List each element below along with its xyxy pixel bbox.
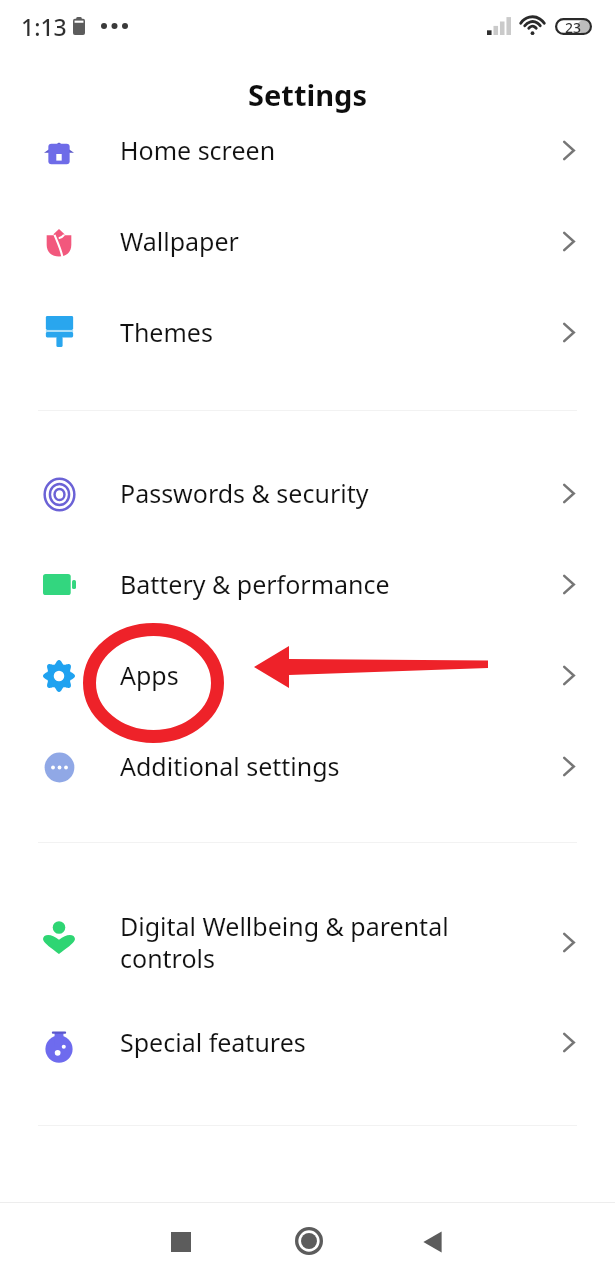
button[interactable]: Special features [0, 996, 615, 1087]
button[interactable]: Digital Wellbeing & parental controls [0, 888, 615, 996]
staticText: Wallpaper [120, 224, 555, 258]
staticText: Apps [120, 658, 555, 692]
button[interactable]: Apps [0, 629, 615, 720]
button[interactable]: Passwords & security [0, 447, 615, 538]
staticText: Themes [120, 315, 555, 349]
button[interactable]: Home screen [0, 104, 615, 195]
staticText: Digital Wellbeing & parental controls [120, 909, 555, 975]
button[interactable]: Battery & performance [0, 538, 615, 629]
button[interactable]: Wallpaper [0, 195, 615, 286]
staticText: 1:13 [21, 11, 67, 42]
staticText: Special features [120, 1025, 555, 1059]
staticText: Battery & performance [120, 567, 555, 601]
staticText: Settings [248, 75, 367, 114]
button[interactable]: Back [391, 1206, 472, 1277]
button[interactable]: Additional settings [0, 720, 615, 811]
staticText: Home screen [120, 133, 555, 167]
button[interactable]: Themes [0, 286, 615, 377]
button[interactable]: Home [268, 1205, 349, 1276]
staticText: 23 [565, 18, 582, 35]
staticText: Additional settings [120, 749, 555, 783]
staticText: Passwords & security [120, 476, 555, 510]
button[interactable]: Recents [140, 1206, 221, 1277]
